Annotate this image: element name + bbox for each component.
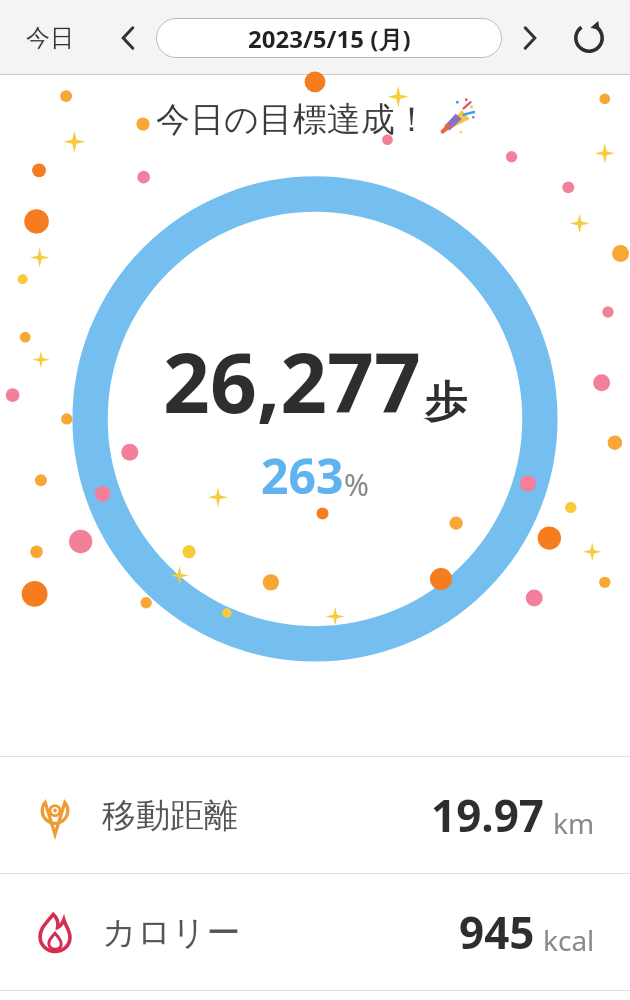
staticText: 945 xyxy=(459,902,535,962)
staticText: カロリー xyxy=(102,911,241,954)
staticText: km xyxy=(553,804,595,842)
staticText: % xyxy=(344,464,369,505)
staticText: 今日の目標達成！ xyxy=(156,98,429,141)
button[interactable]: Previous day xyxy=(106,16,150,60)
staticText: 263 xyxy=(261,443,344,508)
staticText: 26,277 xyxy=(163,325,421,437)
button[interactable]: カロリー xyxy=(0,874,630,990)
staticText: 歩 xyxy=(425,376,467,429)
staticText: 2023/5/15 (月) xyxy=(248,22,411,55)
button[interactable]: Refresh xyxy=(566,15,612,61)
staticText: kcal xyxy=(543,921,595,959)
button[interactable]: 2023/5/15 (月) xyxy=(156,18,502,58)
staticText: 今日 xyxy=(26,23,74,53)
staticText: 移動距離 xyxy=(102,794,238,837)
staticText: 19.97 xyxy=(431,785,545,845)
button[interactable]: Next day xyxy=(508,16,552,60)
button[interactable]: 移動距離 xyxy=(0,757,630,873)
button[interactable]: 今日 xyxy=(18,17,82,59)
